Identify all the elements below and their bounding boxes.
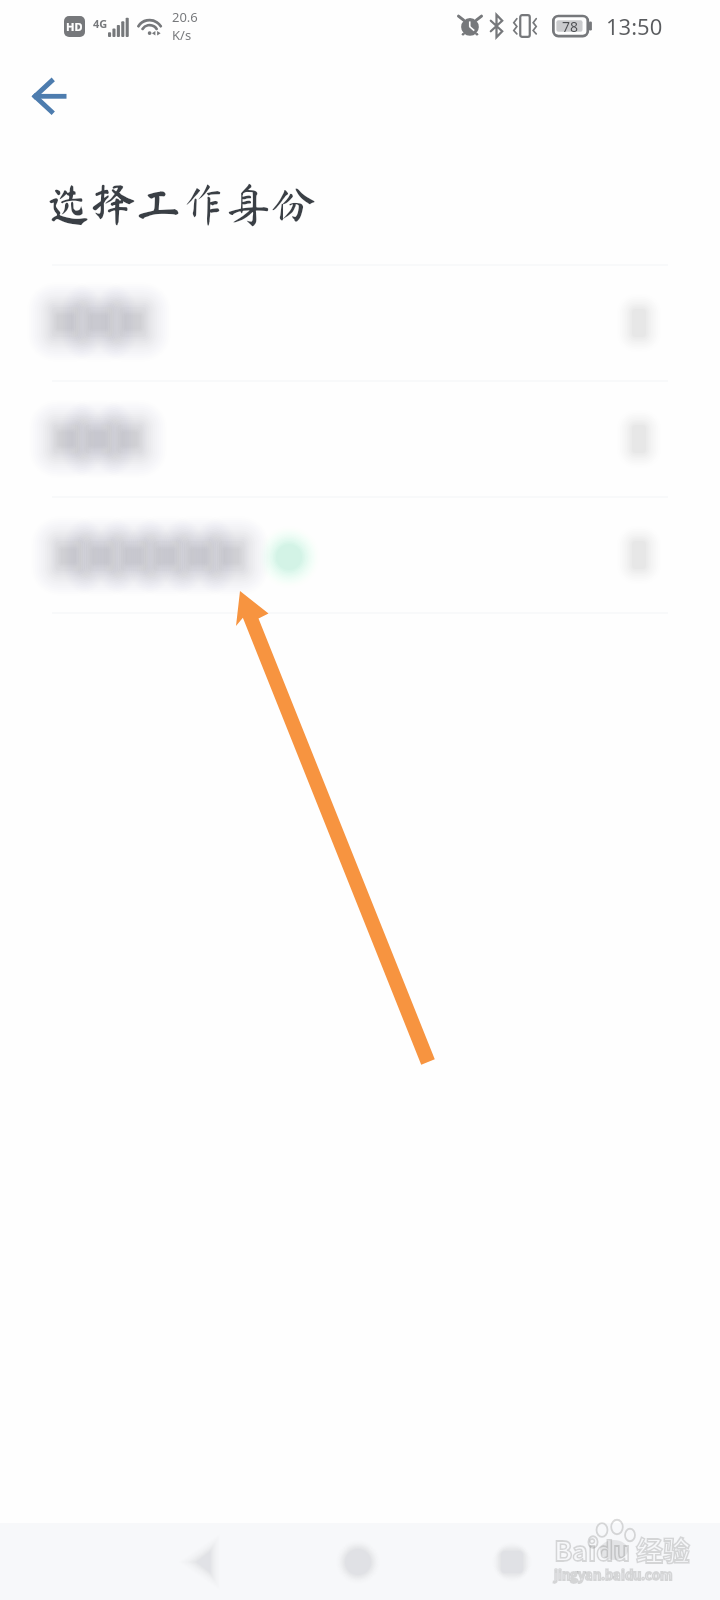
button[interactable] bbox=[0, 265, 720, 381]
staticText: 78 bbox=[562, 17, 579, 36]
button[interactable]: Back bbox=[10, 52, 90, 140]
button[interactable] bbox=[0, 381, 720, 497]
button[interactable]: Home bbox=[310, 1527, 406, 1597]
staticText: HD bbox=[66, 19, 83, 34]
staticText: 20.6 bbox=[172, 8, 198, 26]
staticText: K/s bbox=[172, 26, 192, 44]
button[interactable]: Back bbox=[157, 1527, 253, 1597]
button[interactable]: Recents bbox=[464, 1527, 560, 1597]
button[interactable] bbox=[0, 497, 720, 613]
staticText: 13:50 bbox=[606, 11, 663, 41]
staticText: 4G bbox=[93, 16, 108, 31]
